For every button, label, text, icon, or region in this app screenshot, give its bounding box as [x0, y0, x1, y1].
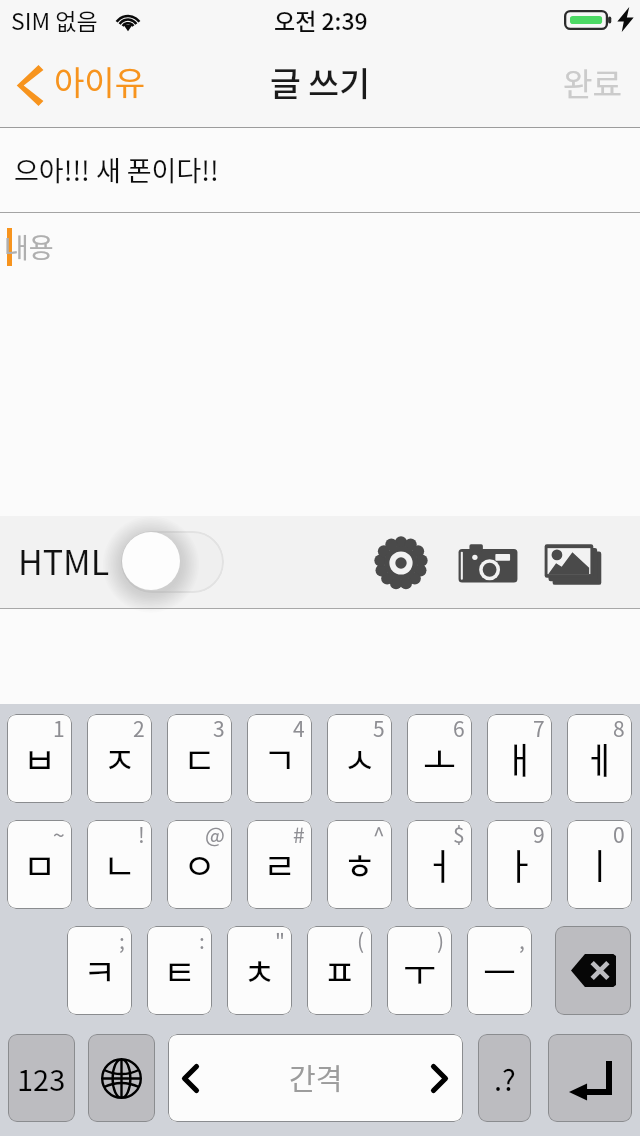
staticText: #: [293, 820, 305, 849]
staticText: ㅁ: [23, 838, 57, 890]
staticText: ㅔ: [583, 732, 617, 784]
staticText: ㄹ: [263, 838, 297, 890]
button[interactable]: 3: [167, 714, 232, 803]
staticText: ㅊ: [243, 944, 277, 996]
button[interactable]: 0: [567, 820, 632, 909]
staticText: (: [357, 926, 365, 955]
staticText: 6: [453, 714, 465, 743]
staticText: ㅓ: [423, 838, 457, 890]
staticText: ㄷ: [183, 732, 217, 784]
staticText: ": [275, 926, 285, 955]
staticText: 123: [17, 1057, 66, 1099]
staticText: 5: [373, 714, 385, 743]
button[interactable]: Settings: [374, 536, 428, 590]
staticText: 글 쓰기: [270, 57, 370, 106]
button[interactable]: 1: [7, 714, 72, 803]
button[interactable]: HTML toggle: [121, 531, 224, 593]
staticText: 내용: [4, 227, 54, 266]
button[interactable]: @: [167, 820, 232, 909]
button[interactable]: ": [227, 926, 292, 1015]
staticText: ㅌ: [163, 944, 197, 996]
staticText: ㅅ: [343, 732, 377, 784]
staticText: ㅎ: [343, 838, 377, 890]
staticText: ㄴ: [103, 838, 137, 890]
button[interactable]: ;: [67, 926, 132, 1015]
staticText: 1: [53, 714, 65, 743]
staticText: ㅍ: [323, 944, 357, 996]
staticText: 간격: [289, 1056, 343, 1098]
button[interactable]: Change language: [88, 1034, 155, 1122]
staticText: 2: [133, 714, 145, 743]
button[interactable]: 8: [567, 714, 632, 803]
staticText: ㅣ: [583, 838, 617, 890]
button[interactable]: 6: [407, 714, 472, 803]
staticText: ㄱ: [263, 732, 297, 784]
staticText: ㅡ: [483, 944, 517, 996]
staticText: 8: [613, 714, 625, 743]
staticText: @: [205, 820, 225, 849]
button[interactable]: 5: [327, 714, 392, 803]
staticText: ㅋ: [83, 944, 117, 996]
staticText: SIM 없음: [11, 3, 98, 36]
staticText: ~: [53, 820, 65, 849]
staticText: ;: [119, 926, 125, 955]
button[interactable]: 4: [247, 714, 312, 803]
staticText: 7: [533, 714, 545, 743]
button[interactable]: !: [87, 820, 152, 909]
staticText: 3: [213, 714, 225, 743]
staticText: ㅈ: [103, 732, 137, 784]
staticText: 0: [613, 820, 625, 849]
staticText: .?: [494, 1057, 516, 1099]
button[interactable]: 7: [487, 714, 552, 803]
staticText: ,: [519, 926, 525, 955]
button[interactable]: Photos: [544, 536, 608, 590]
staticText: ㅐ: [503, 732, 537, 784]
button[interactable]: 2: [87, 714, 152, 803]
button[interactable]: :: [147, 926, 212, 1015]
staticText: 9: [533, 820, 545, 849]
button[interactable]: Space: [168, 1034, 463, 1122]
staticText: 아이유: [54, 57, 146, 105]
staticText: !: [138, 820, 145, 849]
staticText: ㅜ: [403, 944, 437, 996]
button[interactable]: Backspace: [555, 926, 631, 1015]
button[interactable]: Return: [548, 1034, 632, 1122]
staticText: 완료: [563, 59, 622, 105]
button[interactable]: ^: [327, 820, 392, 909]
button[interactable]: #: [247, 820, 312, 909]
button[interactable]: Number keyboard: [8, 1034, 75, 1122]
staticText: ㅗ: [423, 732, 457, 784]
button[interactable]: (: [307, 926, 372, 1015]
button[interactable]: 9: [487, 820, 552, 909]
staticText: 오전 2:39: [274, 3, 368, 36]
button[interactable]: ~: [7, 820, 72, 909]
button[interactable]: ,: [467, 926, 532, 1015]
button[interactable]: $: [407, 820, 472, 909]
staticText: ㅏ: [503, 838, 537, 890]
staticText: 으아!!! 새 폰이다!!: [14, 150, 219, 189]
staticText: ): [437, 926, 445, 955]
staticText: ^: [373, 820, 385, 849]
staticText: 4: [293, 714, 305, 743]
button[interactable]: 아이유: [13, 60, 146, 108]
button[interactable]: Punctuation: [478, 1034, 531, 1122]
button[interactable]: 완료: [563, 59, 622, 105]
button[interactable]: ): [387, 926, 452, 1015]
staticText: $: [453, 820, 465, 849]
staticText: ㅇ: [183, 838, 217, 890]
button[interactable]: Camera: [456, 536, 520, 590]
staticText: HTML: [18, 536, 110, 585]
staticText: :: [199, 926, 205, 955]
staticText: ㅂ: [23, 732, 57, 784]
